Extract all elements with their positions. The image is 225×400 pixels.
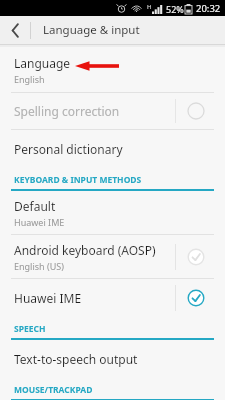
- staticText: Language: [14, 55, 71, 71]
- staticText: 20:32: [196, 2, 221, 15]
- button[interactable]: Not selected: [186, 247, 206, 267]
- staticText: Personal dictionary: [14, 141, 123, 157]
- button[interactable]: Spelling correction toggle: [186, 101, 206, 121]
- staticText: Huawei IME: [14, 216, 65, 228]
- staticText: Default: [14, 198, 56, 214]
- staticText: English (US): [14, 260, 64, 272]
- staticText: English: [14, 73, 45, 85]
- staticText: MOUSE/TRACKPAD: [14, 384, 93, 396]
- staticText: Text-to-speech output: [14, 351, 138, 367]
- button[interactable]: Text-to-speech output: [0, 340, 225, 378]
- staticText: Spelling correction: [14, 103, 120, 119]
- button[interactable]: Selected: [186, 288, 206, 308]
- staticText: H: [147, 3, 152, 11]
- staticText: Language & input: [43, 22, 140, 38]
- button[interactable]: Android keyboard (AOSP): [0, 235, 225, 278]
- button[interactable]: Huawei IME: [0, 279, 225, 317]
- staticText: Android keyboard (AOSP): [14, 242, 156, 258]
- button[interactable]: Spelling correction: [0, 93, 225, 129]
- button[interactable]: Personal dictionary: [0, 130, 225, 168]
- button[interactable]: Back: [0, 16, 30, 44]
- staticText: Huawei IME: [14, 290, 82, 306]
- staticText: KEYBOARD & INPUT METHODS: [14, 174, 142, 186]
- staticText: 52%: [166, 3, 184, 15]
- button[interactable]: Language: [0, 47, 225, 92]
- button[interactable]: Default: [0, 191, 225, 234]
- staticText: SPEECH: [14, 323, 46, 335]
